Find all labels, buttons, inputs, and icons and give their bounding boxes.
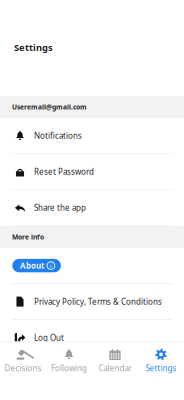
staticText: Share the app [34,202,86,213]
button[interactable]: Settings [138,342,184,388]
button[interactable]: Log Out [0,320,184,356]
staticText: Reset Password [34,166,94,177]
staticText: Notifications [34,130,82,141]
button[interactable]: Share the app [0,190,184,226]
staticText: Settings [14,41,53,53]
staticText: About [20,260,44,271]
button[interactable]: Decisions [0,342,46,388]
button[interactable]: Privacy Policy, Terms & Conditions [0,284,184,320]
button[interactable]: Calendar [92,342,138,388]
staticText: Log Out [34,332,64,343]
staticText: Following [51,363,87,373]
button[interactable]: Notifications [0,118,184,154]
staticText: Settings [145,363,176,373]
staticText: More info [12,233,44,241]
staticText: Useremail@gmail.com [12,103,87,111]
staticText: Calendar [98,363,131,373]
button[interactable]: About [12,259,61,272]
staticText: Decisions [4,363,41,373]
staticText: Privacy Policy, Terms & Conditions [34,296,162,307]
button[interactable]: Reset Password [0,154,184,190]
button[interactable]: Following [46,342,92,388]
